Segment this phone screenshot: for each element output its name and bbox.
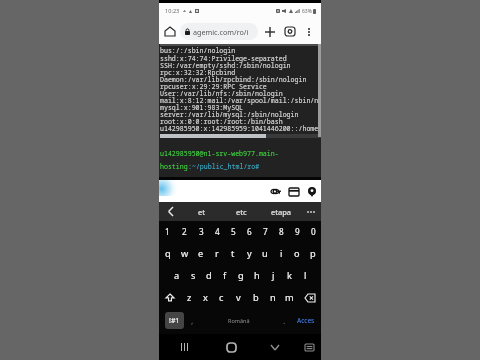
staticText: u142985950@n1-srv-web977.main- (160, 149, 279, 158)
button[interactable]: Addresses (306, 186, 317, 197)
button[interactable]: 3 (193, 221, 209, 243)
staticText: r (215, 247, 219, 260)
staticText: o (294, 247, 300, 260)
button[interactable]: Back (159, 202, 181, 221)
button[interactable]: z (181, 287, 197, 309)
button[interactable]: w (176, 243, 193, 265)
staticText: agemic.com/ro/i (193, 27, 249, 37)
button[interactable]: j (265, 265, 281, 287)
button[interactable]: 0 (305, 221, 321, 243)
button[interactable]: , (184, 309, 200, 331)
staticText: n (270, 291, 276, 304)
button[interactable]: s (185, 265, 201, 287)
button[interactable]: Payment methods (288, 186, 299, 197)
staticText: q (165, 247, 171, 260)
button[interactable]: etc (221, 202, 261, 221)
staticText: 4 (215, 226, 220, 237)
button[interactable]: h (249, 265, 265, 287)
button[interactable]: q (159, 243, 176, 265)
button[interactable]: Recent apps (159, 334, 209, 360)
staticText: 7 (263, 226, 268, 237)
button[interactable]: n (264, 287, 281, 309)
staticText: m (285, 291, 294, 304)
staticText: y (247, 247, 252, 260)
staticText: hosting (160, 162, 188, 171)
staticText: 9 (295, 226, 300, 237)
button[interactable]: p (305, 243, 321, 265)
staticText: a (174, 269, 180, 282)
button[interactable]: y (241, 243, 257, 265)
staticText: 3 (199, 226, 204, 237)
button[interactable]: o (289, 243, 305, 265)
staticText: d (206, 269, 212, 282)
button[interactable]: 9 (289, 221, 305, 243)
staticText: j (272, 269, 275, 282)
staticText: l (304, 269, 307, 282)
button[interactable]: More suggestions (301, 202, 321, 221)
button[interactable]: Search with camera (281, 19, 299, 44)
button[interactable]: Passwords (270, 186, 281, 197)
button[interactable]: 2 (176, 221, 193, 243)
button[interactable]: !#1 (165, 312, 184, 329)
button[interactable]: l (297, 265, 313, 287)
button[interactable]: 8 (273, 221, 289, 243)
button[interactable]: Acces (291, 309, 321, 331)
button[interactable]: m (281, 287, 298, 309)
staticText: k (287, 269, 292, 282)
staticText: !#1 (169, 316, 180, 326)
staticText: z (187, 291, 192, 304)
staticText: , (191, 314, 194, 326)
staticText: 1 (165, 226, 170, 237)
staticText: t (231, 247, 235, 260)
button[interactable]: Română (200, 309, 277, 331)
button[interactable]: 5 (225, 221, 241, 243)
staticText: et (198, 207, 205, 217)
staticText: p (310, 247, 316, 260)
button[interactable]: et (181, 202, 221, 221)
button[interactable]: Home (159, 19, 180, 44)
button[interactable]: i (273, 243, 289, 265)
button[interactable]: 1 (159, 221, 176, 243)
button[interactable]: e (193, 243, 209, 265)
staticText: i (280, 247, 283, 260)
button[interactable]: Switch keyboard (297, 334, 321, 360)
button[interactable]: u (257, 243, 273, 265)
button[interactable]: New tab (261, 19, 279, 44)
staticText: x (203, 291, 208, 304)
button[interactable]: Hide keyboard (253, 334, 297, 360)
staticText: etapa (271, 207, 291, 217)
staticText: . (283, 314, 286, 326)
button[interactable]: More options (301, 19, 317, 44)
button[interactable]: a (168, 265, 185, 287)
button[interactable]: Backspace (298, 287, 321, 309)
button[interactable]: t (225, 243, 241, 265)
staticText: h (254, 269, 260, 282)
button[interactable]: agemic.com/ro/i (180, 23, 258, 40)
button[interactable]: d (201, 265, 217, 287)
staticText: u (262, 247, 268, 260)
staticText: 6 (247, 226, 252, 237)
button[interactable]: Home (209, 334, 253, 360)
button[interactable]: x (197, 287, 213, 309)
button[interactable]: v (230, 287, 247, 309)
button[interactable]: 4 (209, 221, 225, 243)
staticText: s (191, 269, 196, 282)
button[interactable]: r (209, 243, 225, 265)
staticText: w (181, 247, 189, 260)
staticText: etc (236, 207, 247, 217)
button[interactable]: 6 (241, 221, 257, 243)
button[interactable]: c (213, 287, 230, 309)
button[interactable]: 7 (257, 221, 273, 243)
staticText: :~/public_html/ro# (188, 162, 260, 171)
button[interactable]: b (247, 287, 264, 309)
staticText: b (253, 291, 259, 304)
button[interactable]: f (217, 265, 233, 287)
button[interactable]: k (281, 265, 297, 287)
staticText: Acces (297, 316, 315, 325)
button[interactable]: g (233, 265, 249, 287)
staticText: f (223, 269, 227, 282)
button[interactable]: . (277, 309, 291, 331)
staticText: 8 (279, 226, 284, 237)
button[interactable]: Shift (159, 287, 181, 309)
button[interactable]: etapa (261, 202, 301, 221)
